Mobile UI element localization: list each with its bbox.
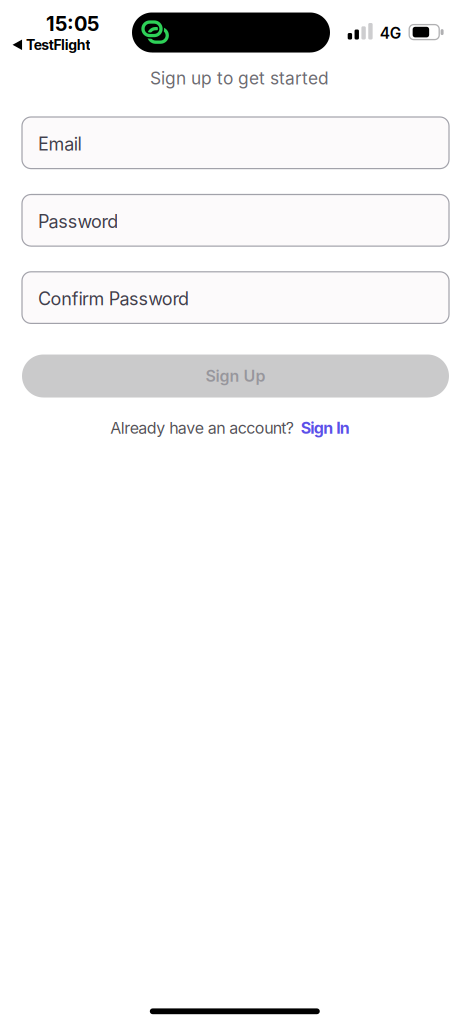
staticText: Sign Up (205, 366, 265, 386)
staticText: TestFlight (26, 36, 90, 53)
button[interactable]: Sign Up (22, 354, 449, 397)
staticText: Confirm Password (38, 288, 189, 310)
staticText: Email (38, 133, 81, 155)
button[interactable]: Email (22, 117, 449, 169)
staticText: Sign In (301, 418, 350, 438)
button[interactable]: Password (22, 194, 449, 246)
button[interactable]: Back to TestFlight (13, 36, 90, 53)
staticText: 15:05 (46, 11, 99, 36)
staticText: Password (38, 211, 118, 232)
staticText: Sign up to get started (150, 68, 329, 89)
staticText: 4G (380, 24, 401, 42)
button[interactable]: Confirm Password (22, 272, 449, 323)
button[interactable]: Sign In (301, 418, 350, 438)
staticText: Already have an account? (110, 418, 294, 438)
